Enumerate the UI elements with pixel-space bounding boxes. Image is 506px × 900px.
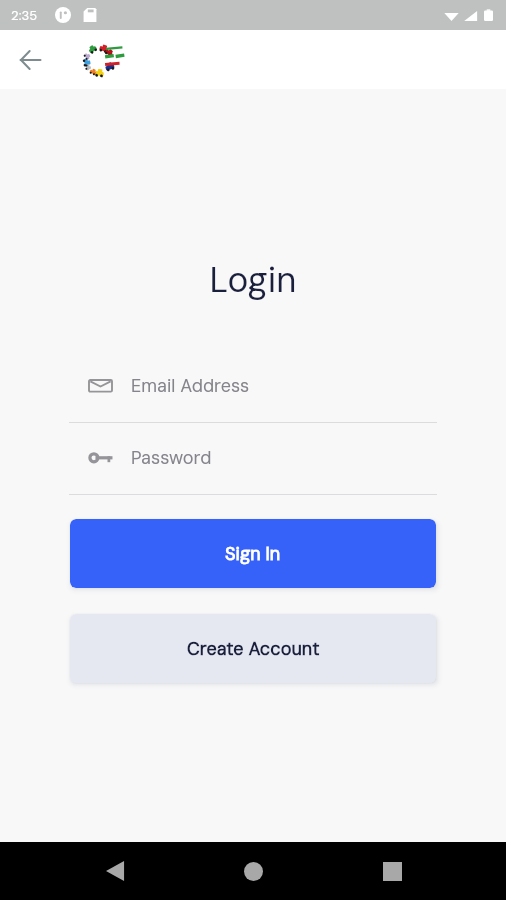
button[interactable]: Home [229, 847, 277, 895]
button[interactable]: Back [91, 847, 139, 895]
button[interactable]: Password [88, 446, 437, 469]
staticText: Create Account [187, 637, 320, 660]
button[interactable]: Sign In [70, 519, 436, 588]
button[interactable]: Recent apps [368, 847, 416, 895]
button[interactable]: Create Account [70, 614, 436, 683]
button[interactable]: Back [10, 40, 50, 80]
staticText: 2:35 [11, 7, 38, 24]
staticText: Sign In [225, 542, 281, 565]
staticText: Password [131, 446, 212, 469]
staticText: Login [0, 257, 506, 303]
staticText: Email Address [131, 374, 250, 397]
button[interactable]: Email Address [88, 374, 437, 397]
